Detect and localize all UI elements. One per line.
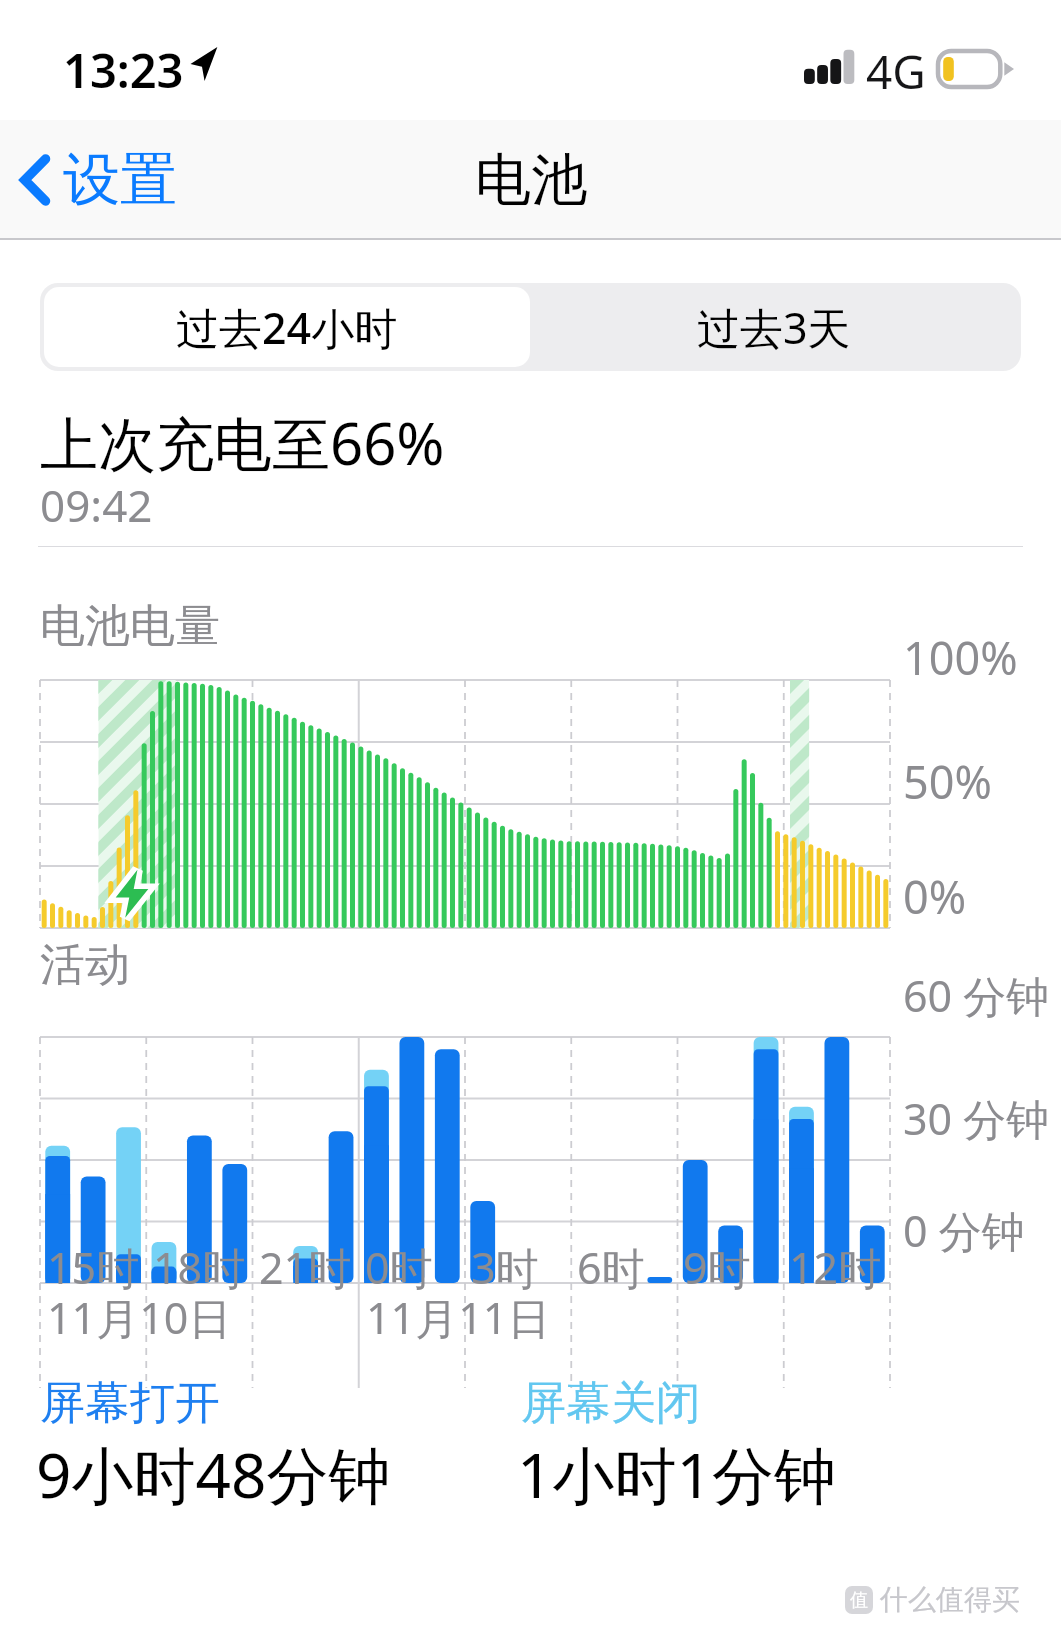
staticText: 3时 <box>471 1238 539 1297</box>
staticText: 9小时48分钟 <box>36 1432 391 1517</box>
staticText: 13:23 <box>63 38 184 102</box>
button[interactable]: 过去24小时 <box>44 287 530 367</box>
staticText: 上次充电至66% <box>40 403 445 482</box>
staticText: 电池 <box>475 145 587 216</box>
staticText: 9时 <box>683 1238 751 1297</box>
staticText: 设置 <box>63 144 177 216</box>
staticText: 21时 <box>259 1238 352 1297</box>
staticText: 1小时1分钟 <box>517 1432 836 1517</box>
staticText: 4G <box>866 40 926 103</box>
staticText: 过去24小时 <box>176 298 398 357</box>
staticText: 0 分钟 <box>903 1201 1025 1260</box>
button[interactable]: 设置 <box>0 132 197 228</box>
staticText: 0% <box>903 866 967 927</box>
staticText: 屏幕关闭 <box>521 1375 701 1432</box>
staticText: 屏幕打开 <box>40 1375 220 1432</box>
staticText: 50% <box>903 751 992 812</box>
staticText: 09:42 <box>40 475 153 535</box>
staticText: 100% <box>903 627 1018 688</box>
staticText: 活动 <box>40 937 130 994</box>
staticText: 值 <box>850 1589 868 1612</box>
staticText: 11月11日 <box>366 1288 551 1347</box>
other: Cellular signal <box>804 46 858 84</box>
staticText: 6时 <box>577 1238 645 1297</box>
staticText: 什么值得买 <box>880 1582 1020 1617</box>
other: Battery <box>936 49 1014 89</box>
staticText: 过去3天 <box>697 298 851 357</box>
staticText: 60 分钟 <box>903 966 1050 1025</box>
staticText: 12时 <box>789 1238 882 1297</box>
staticText: 0时 <box>365 1238 433 1297</box>
staticText: 电池电量 <box>40 598 220 655</box>
button[interactable]: 过去3天 <box>530 287 1017 367</box>
staticText: 11月10日 <box>47 1288 232 1347</box>
staticText: 18时 <box>153 1238 246 1297</box>
staticText: 15时 <box>47 1238 140 1297</box>
staticText: 30 分钟 <box>903 1089 1050 1148</box>
other: Location <box>186 47 218 81</box>
